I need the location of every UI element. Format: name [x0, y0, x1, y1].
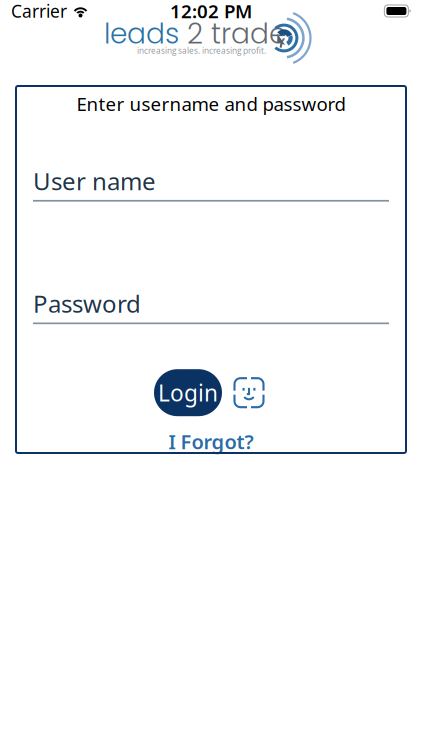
staticText: Password [33, 288, 141, 319]
button[interactable]: Login [154, 369, 222, 416]
staticText: I Forgot? [168, 428, 253, 455]
staticText: trade [211, 14, 286, 53]
button[interactable]: Sign in with Face ID [230, 374, 268, 412]
staticText: Enter username and password [76, 91, 345, 116]
staticText: 12:02 PM [170, 0, 252, 23]
staticText: Login [158, 378, 218, 408]
staticText: 2 [179, 14, 211, 53]
staticText: leads [104, 14, 179, 53]
staticText: Carrier [11, 0, 67, 22]
staticText: increasing sales. increasing profit. [137, 45, 266, 56]
button[interactable]: I Forgot? [160, 426, 261, 457]
staticText: User name [33, 165, 156, 197]
